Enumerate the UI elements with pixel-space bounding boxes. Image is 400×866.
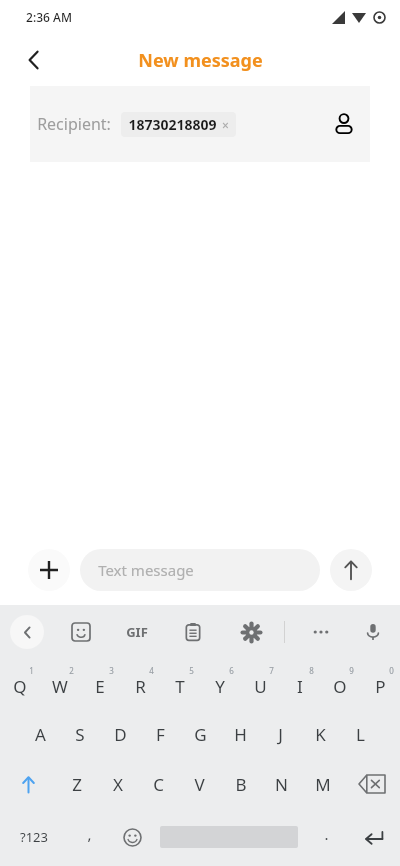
button[interactable]: R <box>120 659 160 709</box>
button[interactable]: . <box>304 809 348 865</box>
staticText: U <box>254 675 267 698</box>
button[interactable]: N <box>261 759 302 809</box>
staticText: O <box>333 675 347 698</box>
staticText: I <box>297 675 303 698</box>
staticText: 6 <box>229 665 234 676</box>
staticText: 18730218809 <box>128 115 217 134</box>
staticText: C <box>153 773 164 796</box>
staticText: Z <box>72 773 82 796</box>
button[interactable]: C <box>138 759 179 809</box>
button[interactable]: Expand toolbar <box>10 615 44 649</box>
staticText: 2:36 AM <box>26 9 72 25</box>
staticText: × <box>222 117 229 133</box>
staticText: X <box>113 773 123 796</box>
button[interactable]: Emoji <box>110 809 154 865</box>
staticText: W <box>52 675 68 698</box>
staticText: 0 <box>389 665 394 676</box>
button[interactable]: Backspace <box>343 759 400 809</box>
button[interactable]: 18730218809 <box>128 115 229 134</box>
button[interactable]: W <box>40 659 80 709</box>
staticText: D <box>114 723 127 746</box>
button[interactable]: D <box>100 709 140 759</box>
staticText: P <box>375 675 386 698</box>
button[interactable]: T <box>160 659 200 709</box>
staticText: 9 <box>349 665 354 676</box>
button[interactable]: Clipboard <box>176 615 210 649</box>
staticText: N <box>275 773 288 796</box>
staticText: A <box>35 723 46 746</box>
button[interactable]: Text message <box>80 549 320 591</box>
button[interactable]: L <box>340 709 380 759</box>
staticText: R <box>135 675 146 698</box>
button[interactable]: Back <box>14 40 54 80</box>
staticText: Recipient: <box>37 113 111 135</box>
button[interactable]: I <box>280 659 320 709</box>
staticText: B <box>235 773 247 796</box>
staticText: Q <box>13 675 27 698</box>
staticText: 4 <box>149 665 154 676</box>
staticText: 1 <box>29 665 34 676</box>
button[interactable]: F <box>140 709 180 759</box>
button[interactable]: Recipient: <box>30 86 370 162</box>
staticText: 3 <box>109 665 114 676</box>
staticText: Y <box>215 675 225 698</box>
staticText: S <box>75 723 85 746</box>
button[interactable]: Send <box>330 549 372 591</box>
button[interactable]: U <box>240 659 280 709</box>
button[interactable]: J <box>260 709 300 759</box>
staticText: F <box>156 723 165 746</box>
button[interactable]: P <box>360 659 400 709</box>
button[interactable]: Shift <box>0 759 57 809</box>
button[interactable]: B <box>220 759 261 809</box>
staticText: Text message <box>98 560 194 580</box>
button[interactable]: Q <box>0 659 40 709</box>
staticText: M <box>315 773 331 796</box>
staticText: T <box>175 675 185 698</box>
staticText: V <box>194 773 205 796</box>
button[interactable]: Settings <box>234 615 268 649</box>
button[interactable]: Z <box>57 759 97 809</box>
button[interactable]: K <box>300 709 340 759</box>
button[interactable]: H <box>220 709 260 759</box>
staticText: J <box>278 723 283 746</box>
staticText: 8 <box>309 665 314 676</box>
button[interactable]: Attach <box>28 549 70 591</box>
button[interactable]: S <box>60 709 100 759</box>
staticText: GIF <box>126 623 148 641</box>
staticText: G <box>194 723 207 746</box>
button[interactable]: More options <box>304 615 338 649</box>
button[interactable]: Stickers <box>64 615 98 649</box>
staticText: 2 <box>69 665 74 676</box>
staticText: , <box>87 824 92 844</box>
button[interactable]: GIF <box>118 613 156 651</box>
staticText: . <box>324 824 329 844</box>
button[interactable]: O <box>320 659 360 709</box>
staticText: 7 <box>269 665 274 676</box>
button[interactable]: G <box>180 709 220 759</box>
button[interactable]: X <box>97 759 138 809</box>
staticText: 5 <box>189 665 194 676</box>
staticText: H <box>234 723 247 746</box>
staticText: K <box>315 723 326 746</box>
button[interactable]: E <box>80 659 120 709</box>
button[interactable]: A <box>20 709 60 759</box>
button[interactable]: V <box>179 759 220 809</box>
staticText: New message <box>138 48 263 73</box>
button[interactable]: Contacts <box>322 102 366 146</box>
button[interactable]: Enter <box>348 809 400 865</box>
staticText: L <box>356 723 365 746</box>
button[interactable]: Y <box>200 659 240 709</box>
button[interactable]: M <box>302 759 343 809</box>
button[interactable]: Voice input <box>356 615 390 649</box>
button[interactable]: , <box>68 809 110 865</box>
staticText: E <box>95 675 105 698</box>
button[interactable]: ?123 <box>0 809 68 865</box>
staticText: ?123 <box>20 828 48 846</box>
